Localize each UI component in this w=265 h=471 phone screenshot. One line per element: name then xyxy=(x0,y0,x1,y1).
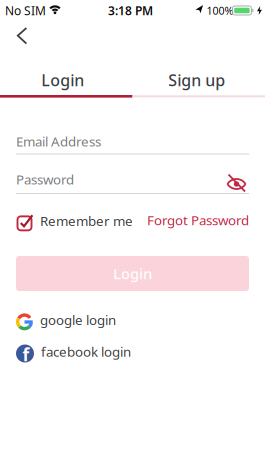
staticText: Remember me xyxy=(40,212,133,230)
staticText: Sign up xyxy=(168,69,225,91)
button[interactable]: Back xyxy=(4,21,40,51)
button[interactable]: Forgot Password xyxy=(124,212,249,228)
staticText: Login xyxy=(41,69,84,91)
staticText: Email Address xyxy=(16,132,101,150)
staticText: Password xyxy=(16,170,74,188)
staticText: Login xyxy=(113,264,152,283)
staticText: f xyxy=(22,343,29,366)
button[interactable]: google login xyxy=(16,313,116,331)
staticText: No SIM xyxy=(5,2,46,18)
button[interactable]: Show password xyxy=(227,174,246,192)
staticText: facebook login xyxy=(41,343,131,360)
staticText: 100% xyxy=(206,3,233,18)
staticText: google login xyxy=(40,311,116,329)
button[interactable]: Sign up xyxy=(130,65,263,95)
staticText: Forgot Password xyxy=(147,211,249,229)
staticText: 3:18 PM xyxy=(108,2,153,18)
button[interactable]: Login xyxy=(16,256,249,291)
button[interactable]: Login xyxy=(0,65,129,95)
button[interactable]: f xyxy=(16,344,131,362)
button[interactable]: Remember me xyxy=(17,214,133,232)
